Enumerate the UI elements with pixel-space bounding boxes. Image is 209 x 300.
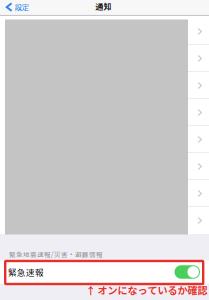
button[interactable] bbox=[0, 126, 209, 153]
button[interactable]: 設定 bbox=[0, 0, 33, 15]
staticText: 設定 bbox=[15, 1, 29, 12]
button[interactable] bbox=[0, 99, 209, 126]
button[interactable] bbox=[0, 45, 209, 72]
button[interactable] bbox=[0, 153, 209, 180]
staticText: 緊急速報 bbox=[8, 266, 44, 278]
staticText: 通知 bbox=[95, 0, 111, 12]
staticText: 緊急地震速報/災害・避難情報 bbox=[9, 249, 103, 259]
button[interactable] bbox=[0, 18, 209, 45]
button[interactable] bbox=[0, 180, 209, 207]
staticText: ↑ オンになっているか確認 bbox=[86, 282, 208, 297]
button[interactable] bbox=[0, 207, 209, 234]
button[interactable]: 緊急速報 bbox=[0, 260, 209, 283]
button[interactable] bbox=[0, 72, 209, 99]
